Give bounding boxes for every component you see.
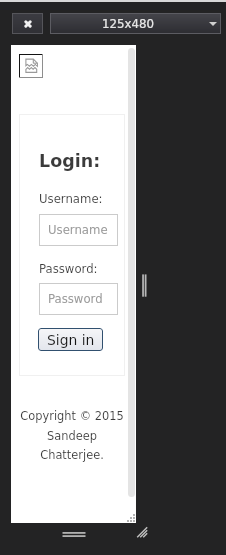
button[interactable]: Close: [12, 13, 43, 34]
staticText: Sandeep: [47, 429, 97, 442]
staticText: Chatterjee.: [40, 448, 104, 461]
staticText: Password: [48, 292, 103, 306]
staticText: Username: [48, 223, 108, 237]
button[interactable]: Password: [39, 283, 118, 315]
button[interactable]: Resize height: [62, 531, 86, 538]
button[interactable]: Sign in: [38, 328, 103, 351]
button[interactable]: 125x480: [50, 13, 221, 34]
button[interactable]: Resize width: [142, 274, 148, 297]
staticText: Copyright © 2015: [20, 409, 124, 422]
staticText: Sign in: [47, 332, 95, 348]
staticText: Login:: [39, 151, 101, 171]
button[interactable]: Username: [39, 214, 118, 246]
button[interactable]: Resize: [136, 526, 148, 538]
staticText: Password:: [39, 262, 98, 276]
staticText: Username:: [39, 192, 103, 206]
staticText: 125x480: [102, 17, 155, 31]
